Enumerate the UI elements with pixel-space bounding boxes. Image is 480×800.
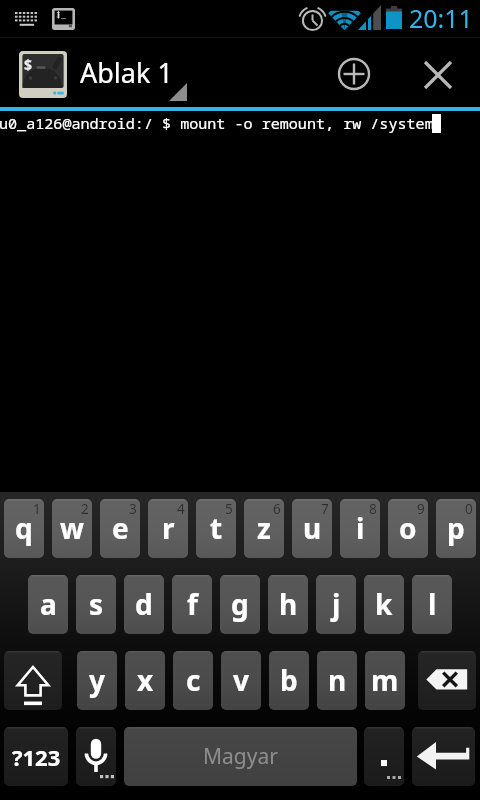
staticText: 20:11: [409, 1, 473, 35]
button[interactable]: Enter: [412, 727, 475, 786]
staticText: k: [375, 585, 393, 623]
staticText: 0: [465, 499, 473, 518]
button[interactable]: x: [125, 651, 165, 710]
staticText: 9: [417, 499, 425, 518]
staticText: r: [162, 509, 175, 547]
button[interactable]: Close window: [406, 38, 470, 107]
button[interactable]: 6: [244, 499, 284, 558]
button[interactable]: s: [76, 575, 116, 634]
staticText: u0_a126@android:/ $ mount -o remount, rw…: [0, 113, 434, 134]
staticText: w: [60, 509, 84, 547]
staticText: n: [328, 661, 347, 699]
staticText: 7: [321, 499, 329, 518]
staticText: q: [15, 509, 33, 547]
staticText: 3: [129, 499, 137, 518]
button[interactable]: 7: [292, 499, 332, 558]
staticText: Magyar: [203, 742, 278, 771]
button[interactable]: ?123: [4, 727, 68, 786]
button[interactable]: New window: [322, 38, 386, 107]
button[interactable]: 1: [4, 499, 44, 558]
button[interactable]: j: [316, 575, 356, 634]
staticText: x: [137, 661, 154, 699]
button[interactable]: a: [28, 575, 68, 634]
staticText: m: [371, 661, 399, 699]
staticText: y: [89, 661, 105, 699]
staticText: 4: [177, 499, 185, 518]
button[interactable]: Magyar: [124, 727, 357, 786]
button[interactable]: f: [172, 575, 212, 634]
button[interactable]: 0: [436, 499, 476, 558]
staticText: f: [187, 585, 198, 623]
button[interactable]: h: [268, 575, 308, 634]
button[interactable]: k: [364, 575, 404, 634]
button[interactable]: v: [221, 651, 261, 710]
staticText: v: [233, 661, 249, 699]
staticText: j: [332, 585, 341, 623]
staticText: a: [40, 585, 57, 623]
button[interactable]: Voice input: [76, 727, 116, 786]
staticText: b: [280, 661, 298, 699]
staticText: $: [24, 55, 33, 74]
button[interactable]: 8: [340, 499, 380, 558]
button[interactable]: Backspace: [418, 651, 476, 710]
button[interactable]: m: [365, 651, 405, 710]
button[interactable]: d: [124, 575, 164, 634]
button[interactable]: b: [269, 651, 309, 710]
button[interactable]: y: [77, 651, 117, 710]
staticText: o: [399, 509, 417, 547]
staticText: d: [135, 585, 153, 623]
button[interactable]: 3: [100, 499, 140, 558]
staticText: u: [303, 509, 322, 547]
staticText: s: [89, 585, 104, 623]
staticText: c: [186, 661, 201, 699]
button[interactable]: 9: [388, 499, 428, 558]
staticText: h: [279, 585, 298, 623]
button[interactable]: 2: [52, 499, 92, 558]
button[interactable]: Shift: [4, 651, 62, 710]
staticText: 6: [273, 499, 281, 518]
button[interactable]: g: [220, 575, 260, 634]
staticText: i: [356, 509, 365, 547]
staticText: p: [447, 509, 465, 547]
staticText: Ablak 1: [80, 54, 173, 91]
staticText: e: [112, 509, 129, 547]
staticText: ?123: [12, 742, 61, 772]
staticText: g: [231, 585, 249, 623]
button[interactable]: 4: [148, 499, 188, 558]
staticText: 2: [81, 499, 89, 518]
button[interactable]: 5: [196, 499, 236, 558]
button[interactable]: n: [317, 651, 357, 710]
button[interactable]: [0, 38, 216, 107]
staticText: z: [257, 509, 271, 547]
staticText: 8: [369, 499, 377, 518]
staticText: l: [428, 585, 437, 623]
button[interactable]: l: [412, 575, 452, 634]
staticText: t: [210, 509, 223, 547]
staticText: 5: [225, 499, 233, 518]
button[interactable]: Period: [364, 727, 404, 786]
button[interactable]: c: [173, 651, 213, 710]
staticText: 1: [33, 499, 41, 518]
